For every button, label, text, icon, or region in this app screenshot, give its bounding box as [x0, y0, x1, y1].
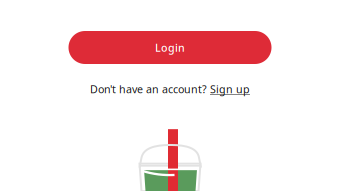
button[interactable]: Login	[68, 31, 271, 64]
button[interactable]: Don't have an account? Sign up	[90, 82, 250, 96]
staticText: Login	[155, 40, 185, 55]
staticText: Don't have an account? Sign up	[90, 82, 250, 96]
